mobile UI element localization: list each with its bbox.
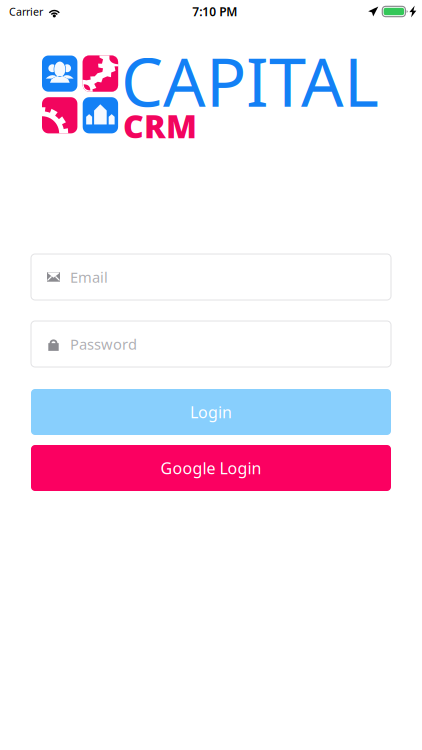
staticText: CAPITAL [121, 36, 379, 125]
button[interactable]: Email [31, 254, 391, 300]
staticText: Password [70, 334, 137, 354]
button[interactable]: Password [31, 321, 391, 367]
staticText: Carrier [9, 4, 43, 19]
staticText: CRM [123, 104, 197, 147]
staticText: Google Login [160, 457, 261, 479]
button[interactable]: Login [31, 389, 391, 435]
staticText: 7:10 PM [192, 3, 237, 19]
staticText: Login [190, 401, 232, 423]
staticText: Email [70, 267, 108, 287]
button[interactable]: Google Login [31, 445, 391, 491]
